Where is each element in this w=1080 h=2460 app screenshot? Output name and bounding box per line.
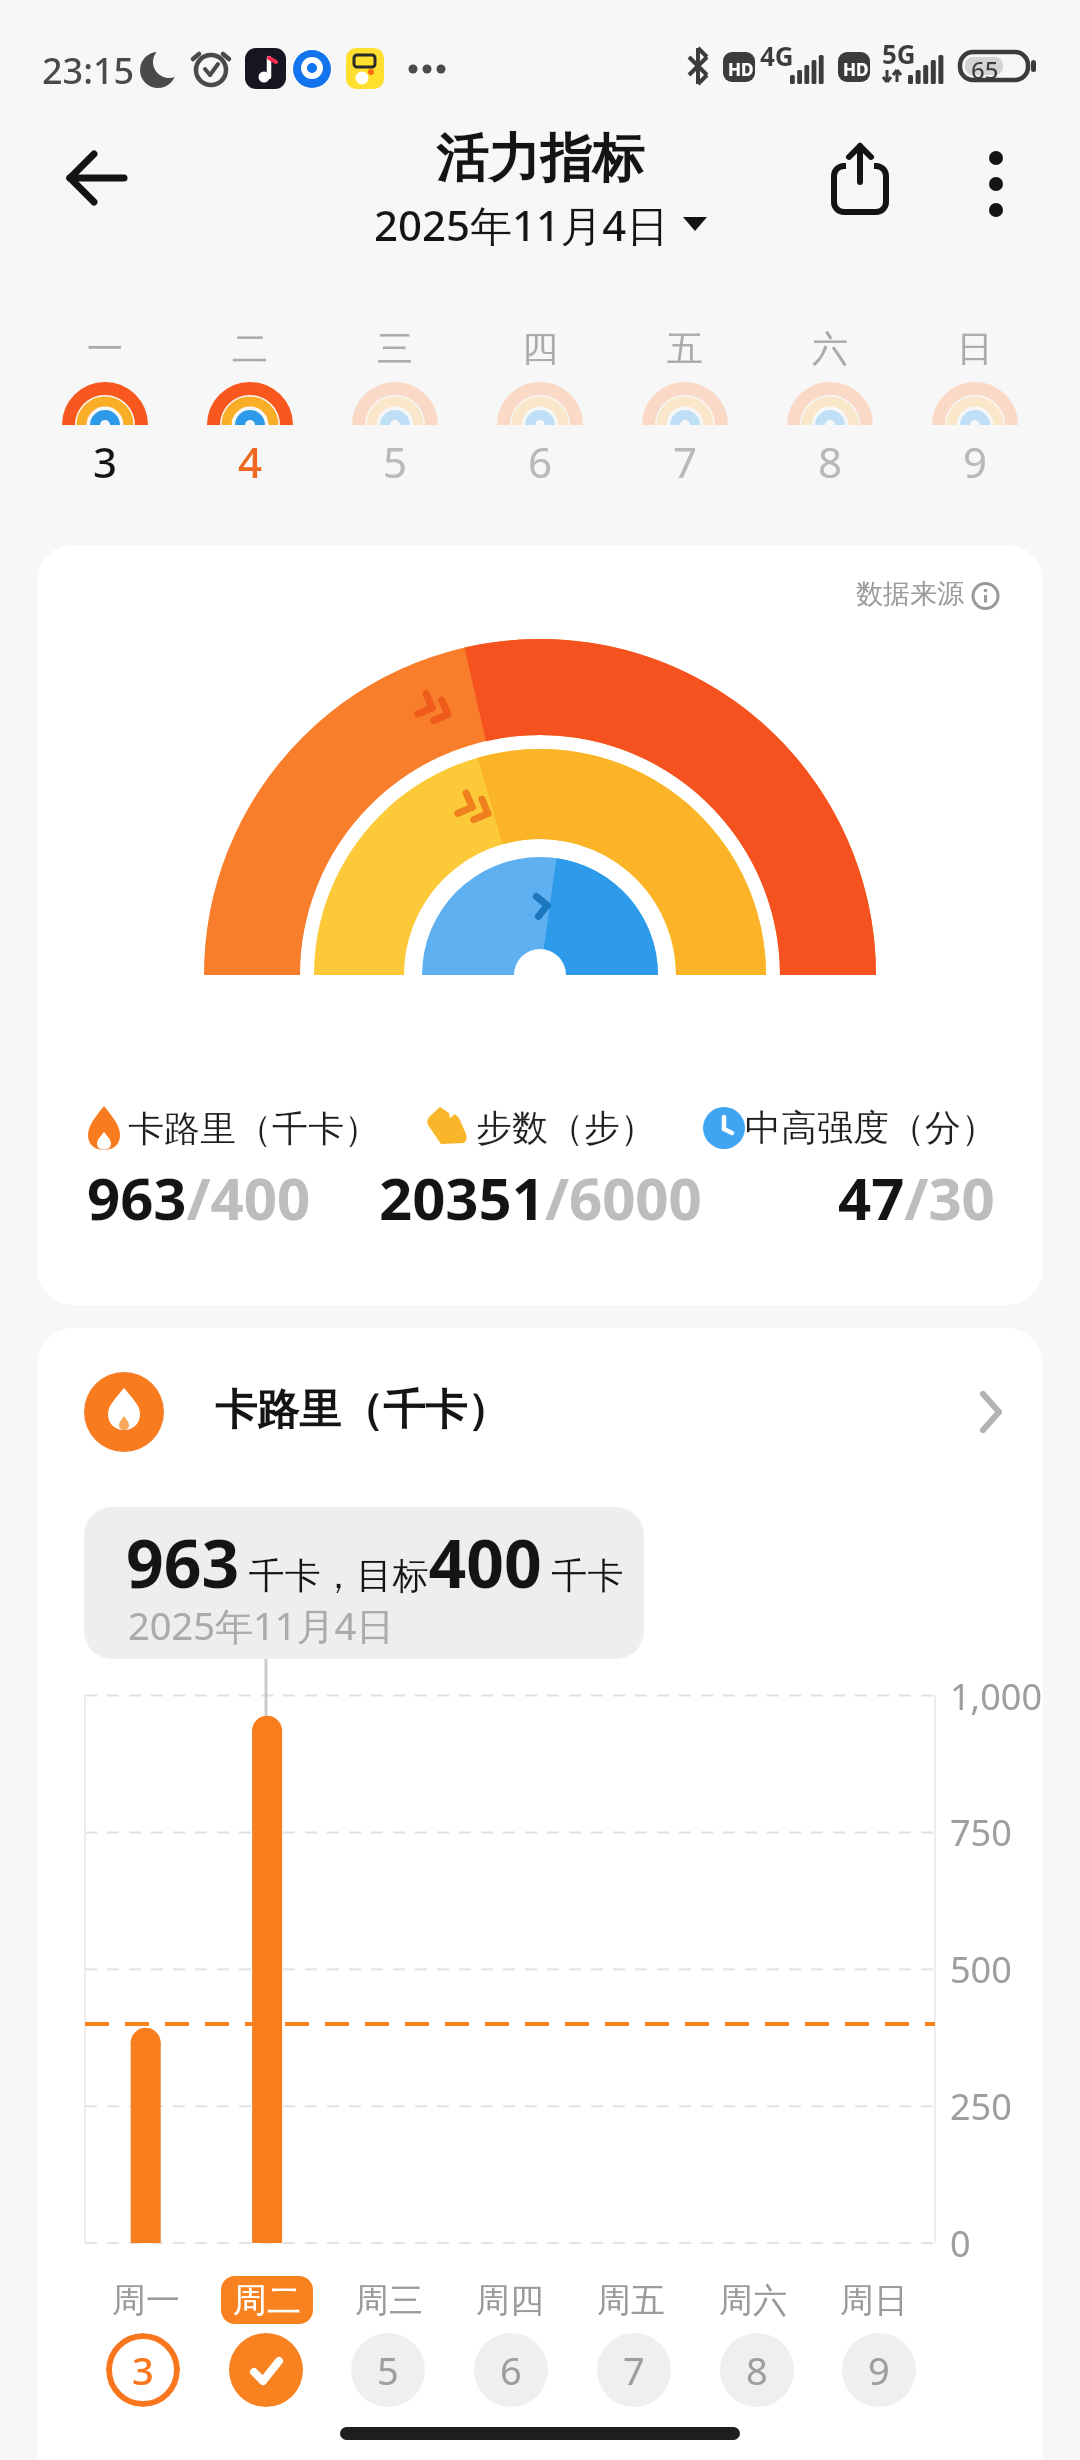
staticText: 500: [950, 1945, 1012, 1994]
staticText: 6: [528, 433, 553, 490]
staticText: 8: [746, 2344, 768, 2396]
button[interactable]: 9: [842, 2333, 916, 2407]
staticText: 6: [500, 2344, 522, 2396]
staticText: 7: [673, 433, 698, 490]
button[interactable]: 数据来源: [856, 577, 999, 611]
staticText: 0: [950, 2219, 971, 2268]
staticText: 963 千卡，目标400 千卡: [126, 1517, 624, 1607]
button[interactable]: 6: [474, 2333, 548, 2407]
staticText: 5G: [882, 36, 916, 71]
button[interactable]: [824, 140, 900, 224]
staticText: 步数（步）: [476, 1105, 656, 1150]
button[interactable]: [52, 136, 142, 220]
staticText: 4: [238, 433, 263, 490]
staticText: 二: [232, 326, 268, 371]
staticText: 20351/6000: [379, 1158, 702, 1237]
button[interactable]: 五: [623, 326, 747, 496]
staticText: 六: [812, 326, 848, 371]
staticText: 750: [950, 1808, 1012, 1857]
staticText: 47/30: [838, 1158, 995, 1237]
staticText: 963/400: [87, 1158, 311, 1237]
button[interactable]: 一: [43, 326, 167, 496]
staticText: 250: [950, 2082, 1012, 2131]
staticText: HD: [728, 58, 754, 81]
button[interactable]: 5: [351, 2333, 425, 2407]
staticText: 8: [818, 433, 843, 490]
staticText: 活力指标: [436, 126, 644, 192]
button[interactable]: 周六: [693, 2276, 813, 2324]
button[interactable]: 周日: [814, 2276, 934, 2324]
staticText: 4G: [760, 38, 794, 73]
staticText: HD: [843, 58, 869, 81]
button[interactable]: 7: [597, 2333, 671, 2407]
staticText: 3: [93, 433, 118, 490]
button[interactable]: 周三: [329, 2276, 449, 2324]
button[interactable]: 三: [333, 326, 457, 496]
staticText: 周四: [476, 2279, 544, 2322]
staticText: 周一: [112, 2279, 180, 2322]
button[interactable]: 六: [768, 326, 892, 496]
button[interactable]: 3: [106, 2333, 180, 2407]
staticText: 周六: [719, 2279, 787, 2322]
staticText: 1,000: [950, 1672, 1043, 1721]
staticText: 卡路里（千卡）: [128, 1106, 380, 1151]
button[interactable]: [229, 2333, 303, 2407]
staticText: 周日: [840, 2279, 908, 2322]
staticText: 5: [383, 433, 408, 490]
button[interactable]: 周四: [450, 2276, 570, 2324]
button[interactable]: 卡路里（千卡）: [37, 1328, 1043, 1488]
staticText: 2025年11月4日: [128, 1599, 395, 1651]
button[interactable]: 周五: [571, 2276, 691, 2324]
staticText: 中高强度（分）: [745, 1105, 997, 1150]
staticText: 周二: [233, 2279, 301, 2322]
staticText: 9: [963, 433, 988, 490]
button[interactable]: 日: [913, 326, 1037, 496]
staticText: 三: [377, 326, 413, 371]
button[interactable]: 周二: [221, 2276, 313, 2324]
staticText: 23:15: [42, 46, 135, 95]
button[interactable]: 2025年11月4日: [0, 196, 1080, 253]
staticText: 日: [957, 326, 993, 371]
staticText: 3: [132, 2344, 154, 2396]
button[interactable]: 四: [478, 326, 602, 496]
button[interactable]: [960, 140, 1032, 224]
staticText: 7: [623, 2344, 645, 2396]
button[interactable]: 二: [188, 326, 312, 496]
staticText: 9: [868, 2344, 890, 2396]
staticText: 卡路里（千卡）: [215, 1384, 509, 1437]
staticText: 四: [522, 326, 558, 371]
staticText: 一: [87, 326, 123, 371]
button[interactable]: 8: [720, 2333, 794, 2407]
staticText: 五: [667, 326, 703, 371]
staticText: 数据来源: [856, 577, 964, 611]
staticText: 5: [377, 2344, 399, 2396]
staticText: 周三: [355, 2279, 423, 2322]
staticText: 周五: [597, 2279, 665, 2322]
button[interactable]: 周一: [86, 2276, 206, 2324]
staticText: 2025年11月4日: [374, 196, 669, 253]
staticText: 65: [971, 53, 999, 86]
